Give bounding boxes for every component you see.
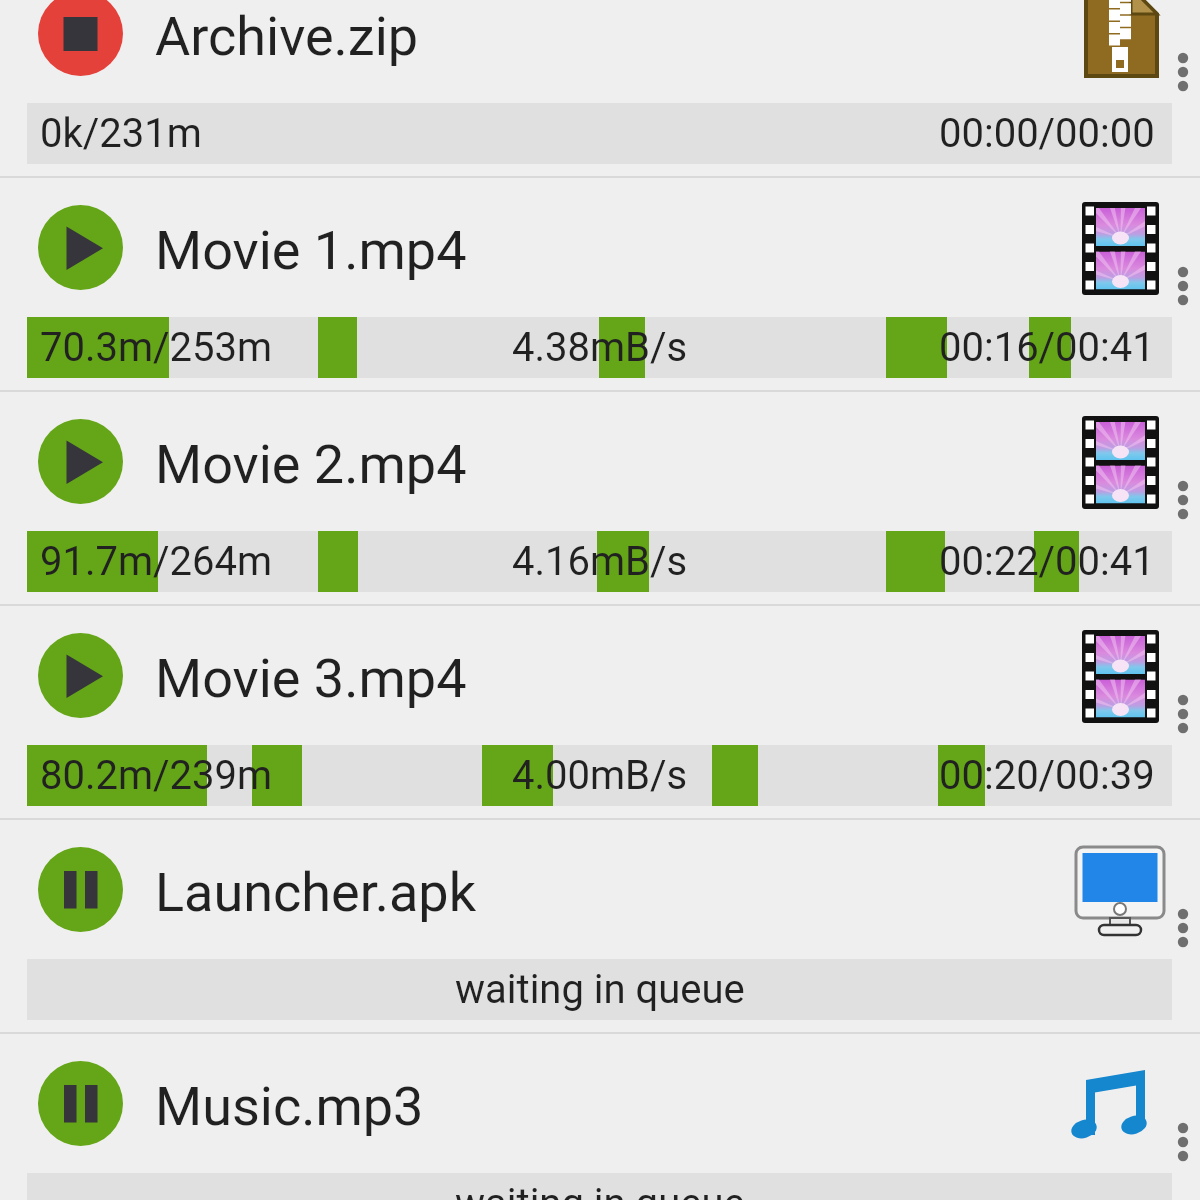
staticText: waiting in queue	[455, 1180, 745, 1200]
button[interactable]	[38, 633, 123, 718]
staticText: Launcher.apk	[155, 861, 477, 924]
staticText: 91.7m/264m	[40, 538, 273, 585]
button[interactable]: Launcher.apk	[0, 820, 1200, 1034]
staticText: 00:22/00:41	[939, 538, 1155, 585]
staticText: waiting in queue	[455, 966, 745, 1013]
button[interactable]	[38, 419, 123, 504]
staticText: 4.38mB/s	[512, 324, 688, 371]
staticText: Archive.zip	[155, 5, 419, 68]
staticText: 00:16/00:41	[939, 324, 1155, 371]
staticText: 00:20/00:39	[939, 752, 1155, 799]
staticText: 4.00mB/s	[512, 752, 688, 799]
staticText: 4.16mB/s	[512, 538, 688, 585]
button[interactable]	[38, 1061, 123, 1146]
staticText: Music.mp3	[155, 1075, 424, 1138]
button[interactable]: Movie 3.mp4	[0, 606, 1200, 820]
button[interactable]: Archive.zip	[0, 0, 1200, 178]
button[interactable]	[1168, 686, 1198, 742]
staticText: 00:00/00:00	[939, 110, 1155, 157]
button[interactable]	[1168, 900, 1198, 956]
button[interactable]: Music.mp3	[0, 1034, 1200, 1164]
button[interactable]: Movie 1.mp4	[0, 178, 1200, 392]
button[interactable]	[1168, 472, 1198, 528]
staticText: Movie 1.mp4	[155, 219, 467, 282]
staticText: 0k/231m	[40, 110, 202, 157]
staticText: Movie 2.mp4	[155, 433, 467, 496]
staticText: Movie 3.mp4	[155, 647, 467, 710]
button[interactable]	[38, 205, 123, 290]
button[interactable]: Movie 2.mp4	[0, 392, 1200, 606]
button[interactable]	[1168, 258, 1198, 314]
button[interactable]	[1168, 1114, 1198, 1170]
staticText: 80.2m/239m	[40, 752, 273, 799]
button[interactable]	[1168, 44, 1198, 100]
staticText: 70.3m/253m	[40, 324, 273, 371]
button[interactable]	[38, 0, 123, 76]
button[interactable]	[38, 847, 123, 932]
